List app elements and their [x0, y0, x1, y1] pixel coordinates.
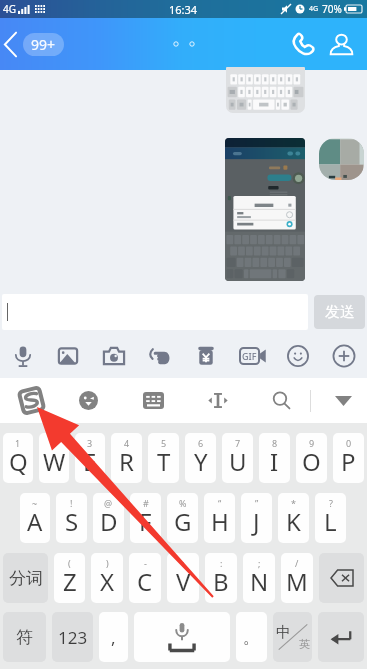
button[interactable]: 123	[52, 612, 93, 662]
button[interactable]: Keyboard layout	[131, 378, 175, 423]
button[interactable]: 6	[185, 433, 216, 483]
staticText: *	[291, 497, 296, 509]
staticText: 4	[124, 437, 130, 449]
staticText: 7	[235, 437, 241, 449]
staticText: 5	[161, 437, 167, 449]
staticText: 中	[276, 623, 291, 642]
button[interactable]: 发送	[314, 295, 365, 329]
staticText: :	[220, 557, 223, 569]
staticText: ,	[111, 626, 116, 649]
staticText: !	[70, 497, 73, 509]
button[interactable]: Poke	[137, 333, 183, 378]
button[interactable]: *	[278, 493, 309, 543]
button[interactable]	[226, 67, 305, 113]
staticText: ?	[329, 497, 333, 509]
staticText: 3	[87, 437, 93, 449]
button[interactable]: Move cursor	[196, 378, 240, 423]
button[interactable]: :	[205, 553, 237, 603]
staticText: 发送	[325, 303, 355, 322]
staticText: X	[100, 565, 115, 598]
button[interactable]: 2	[39, 433, 69, 483]
button[interactable]: -	[129, 553, 161, 603]
button[interactable]: Search	[259, 378, 303, 423]
staticText: /	[295, 557, 299, 569]
staticText: GIF	[242, 350, 257, 362]
button[interactable]: ~	[20, 493, 50, 543]
button[interactable]: 1	[3, 433, 33, 483]
button[interactable]: #	[130, 493, 161, 543]
button[interactable]: Sogou input	[8, 378, 54, 423]
staticText: )	[106, 557, 109, 569]
button[interactable]: “	[204, 493, 235, 543]
staticText: 9	[309, 437, 315, 449]
button[interactable]: GIF	[229, 333, 275, 378]
staticText: N	[250, 565, 269, 598]
button[interactable]: Photos	[45, 333, 91, 378]
staticText: I	[270, 445, 279, 478]
button[interactable]: 3	[75, 433, 105, 483]
button[interactable]	[225, 138, 305, 281]
button[interactable]	[318, 612, 364, 662]
staticText: P	[341, 445, 356, 478]
staticText: M	[286, 565, 308, 598]
button[interactable]: 符	[3, 612, 46, 662]
staticText: W	[43, 445, 66, 478]
staticText: 分词	[9, 568, 43, 589]
button[interactable]: 5	[148, 433, 179, 483]
button[interactable]: Emoji	[275, 333, 321, 378]
button[interactable]: 7	[222, 433, 253, 483]
staticText: ;	[258, 557, 261, 569]
button[interactable]: ;	[243, 553, 275, 603]
staticText: 1	[15, 437, 21, 449]
button[interactable]: More	[321, 333, 367, 378]
button[interactable]: !	[56, 493, 87, 543]
staticText: 。	[243, 627, 260, 648]
staticText: ~	[32, 497, 38, 509]
button[interactable]: Red packet	[183, 333, 229, 378]
button[interactable]: Avatar	[319, 138, 364, 180]
staticText: “	[218, 497, 222, 509]
button[interactable]: Voice	[0, 333, 45, 378]
button[interactable]: 中	[273, 612, 312, 662]
button[interactable]: (	[54, 553, 85, 603]
button[interactable]: Call	[287, 28, 319, 60]
button[interactable]: Hide keyboard	[320, 378, 366, 423]
staticText: 4G	[309, 4, 319, 14]
staticText: 8	[272, 437, 278, 449]
staticText: 123	[58, 626, 88, 649]
button[interactable]: Profile	[325, 28, 357, 60]
button[interactable]	[2, 294, 308, 330]
button[interactable]: 8	[259, 433, 290, 483]
button[interactable]: 分词	[3, 553, 48, 603]
staticText: Z	[63, 565, 77, 598]
button[interactable]: ?	[315, 493, 346, 543]
button[interactable]: ,	[99, 612, 128, 662]
staticText: #	[143, 497, 149, 509]
staticText: 16:34	[169, 2, 198, 17]
button[interactable]: Camera	[91, 333, 137, 378]
button[interactable]: Back	[2, 31, 64, 58]
staticText: 6	[198, 437, 204, 449]
button[interactable]: 0	[333, 433, 364, 483]
staticText: 符	[16, 627, 33, 648]
staticText: J	[253, 505, 260, 538]
button[interactable]: @	[93, 493, 124, 543]
staticText: A	[27, 505, 43, 538]
staticText: G	[174, 505, 192, 538]
button[interactable]: %	[167, 493, 198, 543]
staticText: L	[324, 505, 337, 538]
button[interactable]: 4	[111, 433, 142, 483]
staticText: 0	[346, 437, 352, 449]
button[interactable]: :	[167, 553, 199, 603]
button[interactable]: /	[281, 553, 313, 603]
button[interactable]	[319, 553, 364, 603]
button[interactable]: )	[91, 553, 123, 603]
staticText: K	[286, 505, 301, 538]
button[interactable]: 。	[236, 612, 267, 662]
staticText: %	[179, 497, 187, 509]
button[interactable]	[134, 612, 230, 662]
button[interactable]: 9	[296, 433, 327, 483]
staticText: (	[68, 557, 71, 569]
button[interactable]: ”	[241, 493, 272, 543]
button[interactable]: Emoji	[66, 378, 110, 423]
